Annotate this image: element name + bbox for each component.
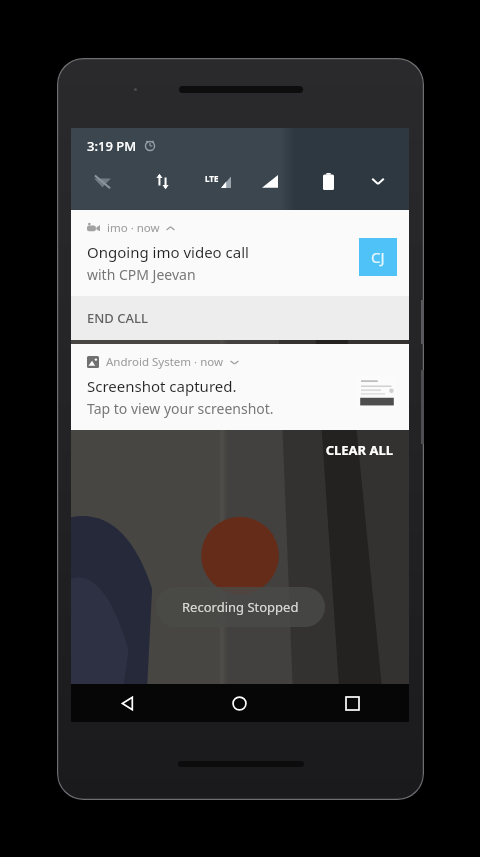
button[interactable]: Home [183,684,296,722]
button[interactable]: Signal [257,168,283,194]
staticText: Jio 4G|!dea [208,683,272,699]
button[interactable]: imo · now [71,210,409,296]
staticText: Ongoing imo video call [87,242,249,262]
staticText: 3:19 PM [87,137,137,155]
button[interactable]: Android System · now [71,344,409,430]
staticText: Recording Stopped [182,598,299,616]
button[interactable]: Expand quick settings [365,168,391,194]
button[interactable]: LTE signal [205,168,231,194]
staticText: with CPM Jeevan [87,265,196,284]
staticText: imo · now [107,220,160,236]
button[interactable]: Recent apps [296,684,409,722]
staticText: CJ [371,247,385,267]
button[interactable]: CLEAR ALL [71,430,409,470]
button[interactable]: Back [71,684,183,722]
staticText: LTE [205,173,219,184]
staticText: Android System · now [106,354,224,370]
staticText: Screenshot captured. [87,376,237,396]
button[interactable]: Battery [315,168,341,194]
button[interactable]: Wifi off [89,168,115,194]
staticText: END CALL [87,309,148,327]
staticText: Tap to view your screenshot. [87,399,274,418]
button[interactable]: Mobile data [149,168,175,194]
button[interactable]: END CALL [71,296,409,340]
staticText: CLEAR ALL [325,441,393,459]
